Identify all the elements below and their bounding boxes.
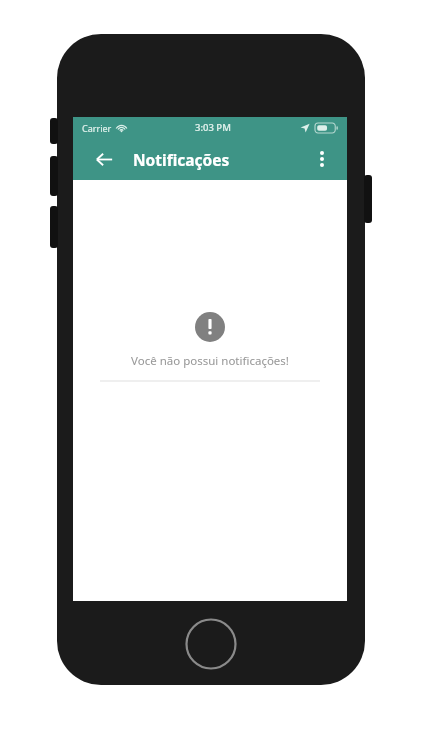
staticText: Você não possui notificações! xyxy=(131,353,289,369)
button[interactable]: Home xyxy=(185,618,237,670)
staticText: Notificações xyxy=(133,149,230,170)
button[interactable]: Back xyxy=(89,144,119,174)
staticText: Carrier xyxy=(82,122,112,134)
staticText: 3:03 PM xyxy=(195,121,231,134)
button[interactable]: More options xyxy=(307,144,337,174)
